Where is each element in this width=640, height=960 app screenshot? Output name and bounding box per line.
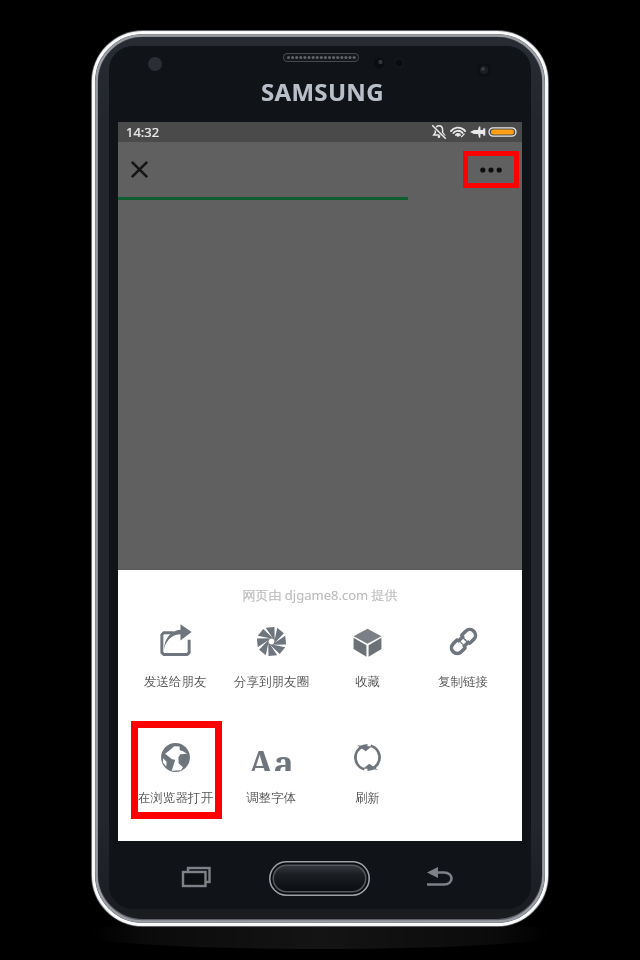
staticText: 刷新 xyxy=(355,790,380,806)
staticText: 网页由 djgame8.com 提供 xyxy=(118,586,522,604)
staticText: 收藏 xyxy=(355,674,380,690)
staticText: SAMSUNG xyxy=(261,75,384,108)
button[interactable]: Refresh xyxy=(319,742,415,806)
button[interactable]: Share to moments xyxy=(223,626,319,690)
staticText: Aa xyxy=(248,740,295,771)
button[interactable]: Open in browser xyxy=(127,742,223,806)
button[interactable]: Copy link xyxy=(415,626,511,690)
staticText: 14:32 xyxy=(126,123,160,141)
button[interactable]: Close xyxy=(121,148,157,191)
button[interactable]: Adjust font size xyxy=(223,742,319,806)
button[interactable]: More options xyxy=(463,151,519,188)
staticText: 发送给朋友 xyxy=(144,674,207,690)
staticText: 调整字体 xyxy=(246,790,296,806)
button[interactable]: Favourite xyxy=(319,626,415,690)
staticText: 在浏览器打开 xyxy=(138,790,213,806)
button[interactable]: Send to friend xyxy=(127,626,223,690)
staticText: 复制链接 xyxy=(438,674,488,690)
staticText: 分享到朋友圈 xyxy=(234,674,309,690)
